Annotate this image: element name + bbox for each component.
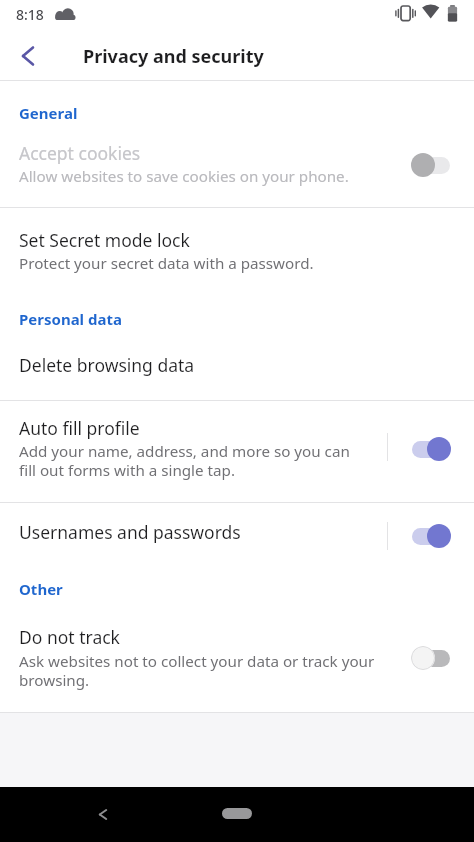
- staticText: Personal data: [19, 309, 122, 329]
- button[interactable]: [222, 808, 252, 819]
- staticText: Set Secret mode lock: [19, 228, 190, 252]
- staticText: Usernames and passwords: [19, 520, 241, 544]
- staticText: Other: [19, 579, 63, 599]
- staticText: Allow websites to save cookies on your p…: [19, 166, 349, 187]
- staticText: Protect your secret data with a password…: [19, 253, 314, 274]
- staticText: Do not track: [19, 625, 120, 649]
- button[interactable]: [88, 800, 117, 829]
- button[interactable]: Do not track: [0, 610, 474, 712]
- staticText: General: [19, 103, 78, 123]
- button[interactable]: Auto fill profile: [0, 401, 474, 502]
- button[interactable]: Accept cookies: [0, 132, 474, 202]
- staticText: Delete browsing data: [19, 353, 195, 377]
- staticText: Add your name, address, and more so you …: [19, 441, 350, 480]
- button[interactable]: Delete browsing data: [0, 336, 474, 400]
- staticText: 8:18: [16, 5, 44, 24]
- button[interactable]: [6, 36, 50, 76]
- button[interactable]: Usernames and passwords: [0, 503, 474, 565]
- staticText: Privacy and security: [83, 44, 264, 69]
- staticText: Auto fill profile: [19, 416, 140, 440]
- staticText: Accept cookies: [19, 141, 141, 165]
- button[interactable]: Set Secret mode lock: [0, 208, 474, 293]
- staticText: Ask websites not to collect your data or…: [19, 651, 375, 690]
